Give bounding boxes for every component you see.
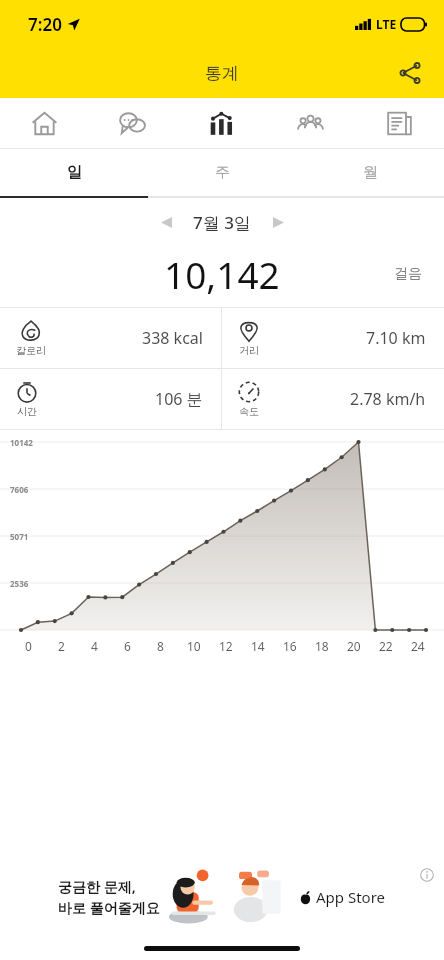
- staticText: LTE: [376, 16, 397, 32]
- button[interactable]: 칼로리: [0, 308, 221, 368]
- staticText: 2: [58, 638, 65, 654]
- button[interactable]: Ad info: [418, 866, 436, 884]
- staticText: 8: [157, 638, 164, 654]
- staticText: 7.10 km: [366, 327, 426, 349]
- staticText: 22: [379, 638, 393, 654]
- staticText: 궁금한 문제, 바로 풀어줄게요: [58, 877, 160, 917]
- staticText: 16: [283, 638, 297, 654]
- staticText: 7606: [10, 484, 29, 495]
- staticText: 시간: [17, 405, 37, 418]
- staticText: 걸음: [394, 265, 422, 283]
- staticText: 통계: [205, 63, 239, 84]
- staticText: 338 kcal: [142, 327, 203, 349]
- staticText: 20: [347, 638, 361, 654]
- staticText: 월: [363, 163, 378, 182]
- staticText: 12: [219, 638, 233, 654]
- button[interactable]: 월: [296, 149, 444, 196]
- button[interactable]: Chats: [88, 98, 177, 148]
- staticText: 24: [411, 638, 425, 654]
- staticText: 4: [91, 638, 98, 654]
- staticText: 6: [124, 638, 131, 654]
- staticText: 주: [215, 163, 230, 182]
- staticText: 7:20: [28, 13, 62, 36]
- staticText: 2536: [10, 578, 29, 589]
- staticText: 일: [67, 163, 82, 182]
- button[interactable]: 시간: [0, 369, 221, 429]
- button[interactable]: News: [355, 98, 444, 148]
- button[interactable]: 궁금한 문제, 바로 풀어줄게요: [0, 858, 444, 936]
- button[interactable]: 속도: [222, 369, 444, 429]
- staticText: 거리: [239, 344, 259, 357]
- staticText: 2.78 km/h: [350, 388, 426, 410]
- button[interactable]: 주: [148, 149, 296, 196]
- button[interactable]: Friends: [266, 98, 355, 148]
- staticText: 14: [251, 638, 265, 654]
- staticText: 속도: [239, 405, 259, 418]
- button[interactable]: Home: [0, 98, 88, 148]
- button[interactable]: 일: [0, 149, 148, 196]
- button[interactable]: Next day: [263, 207, 293, 237]
- staticText: 10: [187, 638, 201, 654]
- button[interactable]: Share: [388, 51, 432, 95]
- staticText: 106 분: [155, 388, 203, 410]
- button[interactable]: Previous day: [151, 207, 181, 237]
- staticText: 칼로리: [16, 344, 46, 357]
- staticText: App Store: [316, 887, 386, 907]
- staticText: 0: [25, 638, 32, 654]
- staticText: 5071: [10, 531, 29, 542]
- staticText: 10142: [10, 437, 33, 448]
- button[interactable]: 거리: [222, 308, 444, 368]
- staticText: 10,142: [164, 249, 280, 299]
- staticText: 18: [315, 638, 329, 654]
- staticText: 7월 3일: [193, 211, 251, 234]
- button[interactable]: Statistics: [177, 98, 266, 148]
